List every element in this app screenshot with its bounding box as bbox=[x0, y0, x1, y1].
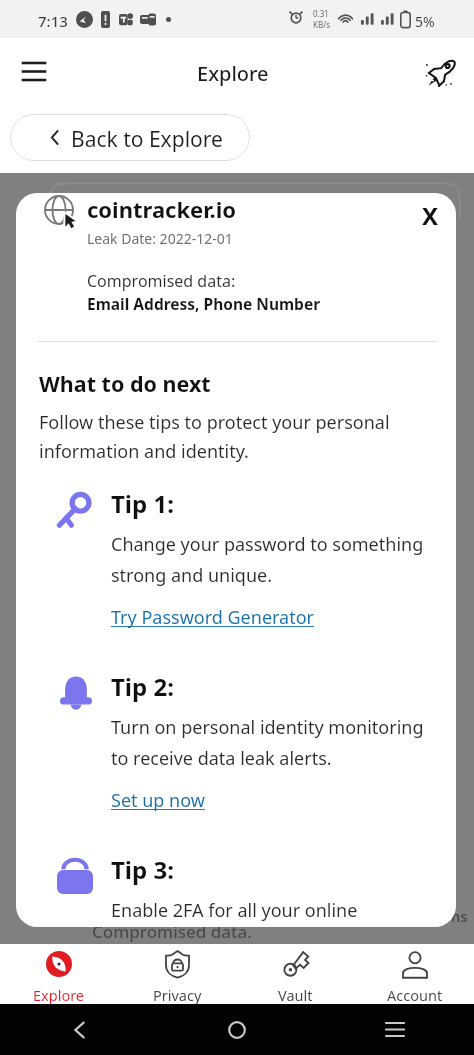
staticText: Tip 1: bbox=[111, 487, 174, 520]
button[interactable]: Try Password Generator bbox=[111, 605, 315, 630]
button[interactable]: Close bbox=[406, 193, 454, 237]
staticText: Turn on personal identity monitoring to … bbox=[111, 715, 456, 771]
button[interactable]: Open navigation menu bbox=[12, 43, 56, 87]
staticText: Try Password Generator bbox=[111, 605, 315, 630]
staticText: ms bbox=[446, 906, 468, 926]
staticText: X bbox=[422, 199, 439, 232]
button[interactable]: Home bbox=[158, 1004, 316, 1055]
staticText: 5% bbox=[415, 12, 435, 31]
staticText: Vault bbox=[278, 985, 313, 1004]
staticText: Privacy bbox=[153, 985, 202, 1004]
staticText: Email Address, Phone Number bbox=[87, 293, 321, 314]
staticText: 7:13 bbox=[38, 11, 68, 31]
other: Recent apps bbox=[386, 1023, 404, 1036]
button[interactable]: Back bbox=[0, 1004, 158, 1055]
staticText: cointracker.io bbox=[87, 194, 237, 224]
button[interactable]: Back to Explore bbox=[10, 114, 250, 161]
staticText: Explore bbox=[197, 60, 269, 87]
staticText: Enable 2FA for all your online compromis… bbox=[111, 898, 456, 927]
staticText: Account bbox=[387, 985, 443, 1004]
staticText: Follow these tips to protect your person… bbox=[39, 410, 439, 463]
staticText: What to do next bbox=[39, 369, 211, 398]
button[interactable]: Account bbox=[355, 944, 474, 1004]
button[interactable]: Rocket bbox=[416, 43, 460, 87]
staticText: Compromised data. bbox=[92, 920, 252, 943]
staticText: Set up now bbox=[111, 788, 205, 813]
button[interactable]: Vault bbox=[236, 944, 355, 1004]
staticText: Tip 2: bbox=[111, 670, 174, 703]
staticText: Leak Date: 2022-12-01 bbox=[87, 229, 233, 248]
other: Back bbox=[73, 1020, 86, 1040]
button[interactable]: Recent apps bbox=[316, 1004, 474, 1055]
button[interactable]: Privacy bbox=[118, 944, 236, 1004]
other: Home bbox=[228, 1021, 246, 1039]
staticText: KB/s bbox=[313, 19, 330, 30]
staticText: Change your password to something strong… bbox=[111, 532, 456, 588]
staticText: Back to Explore bbox=[71, 125, 223, 154]
button[interactable]: Explore bbox=[0, 944, 118, 1004]
staticText: Tip 3: bbox=[111, 853, 174, 886]
staticText: Compromised data: bbox=[87, 270, 236, 292]
staticText: 0.31 bbox=[313, 8, 329, 19]
staticText: Explore bbox=[33, 985, 85, 1004]
button[interactable]: Set up now bbox=[111, 788, 205, 813]
